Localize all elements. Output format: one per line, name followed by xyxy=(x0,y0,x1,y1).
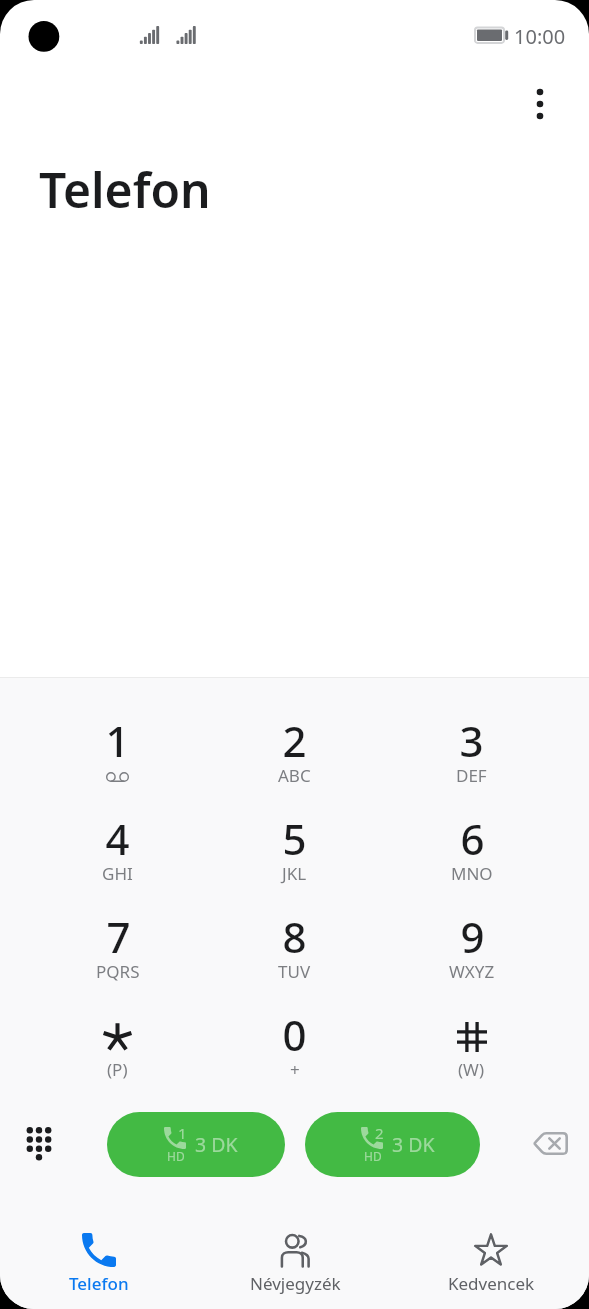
button[interactable]: 3 xyxy=(383,699,560,797)
button[interactable]: Keypad xyxy=(9,1112,69,1172)
button[interactable]: 1 xyxy=(29,699,206,797)
staticText: DEF xyxy=(456,764,487,787)
button[interactable]: Backspace xyxy=(520,1113,580,1173)
button[interactable]: 7 xyxy=(29,895,206,993)
button[interactable]: 2 xyxy=(305,1112,480,1177)
staticText: 7 xyxy=(106,908,131,965)
staticText: PQRS xyxy=(96,960,140,983)
button[interactable]: 1 xyxy=(107,1112,285,1177)
staticText: Névjegyzék xyxy=(250,1272,341,1295)
staticText: 0 xyxy=(282,1006,307,1063)
staticText: 10:00 xyxy=(514,23,566,50)
button[interactable]: 4 xyxy=(29,797,206,895)
staticText: 1 xyxy=(105,712,130,769)
staticText: 8 xyxy=(282,908,307,965)
staticText: 6 xyxy=(460,810,485,867)
staticText: 4 xyxy=(105,810,130,867)
staticText: (W) xyxy=(458,1058,485,1081)
button[interactable]: 8 xyxy=(206,895,383,993)
staticText: 1 xyxy=(178,1123,187,1143)
staticText: + xyxy=(290,1058,300,1081)
button[interactable]: 9 xyxy=(383,895,560,993)
staticText: HD xyxy=(364,1148,382,1164)
staticText: 2 xyxy=(282,712,307,769)
staticText: MNO xyxy=(451,862,493,885)
button[interactable]: Pound xyxy=(383,993,560,1091)
staticText: GHI xyxy=(102,862,133,885)
button[interactable]: 5 xyxy=(206,797,383,895)
button[interactable]: 6 xyxy=(383,797,560,895)
staticText: Telefon xyxy=(39,157,211,222)
staticText: 2 xyxy=(375,1123,384,1143)
staticText: Telefon xyxy=(69,1272,129,1295)
staticText: (P) xyxy=(107,1058,128,1081)
button[interactable]: 0 xyxy=(206,993,383,1091)
button[interactable]: Névjegyzék xyxy=(197,1199,393,1309)
button[interactable]: More options xyxy=(512,76,568,132)
staticText: 5 xyxy=(282,810,307,867)
staticText: JKL xyxy=(282,862,307,885)
staticText: HD xyxy=(167,1148,185,1164)
staticText: 3 DK xyxy=(195,1131,238,1158)
button[interactable]: Telefon xyxy=(0,1199,197,1309)
staticText: 9 xyxy=(460,908,485,965)
staticText: 3 xyxy=(459,712,484,769)
staticText: ABC xyxy=(278,764,311,787)
staticText: Kedvencek xyxy=(448,1272,535,1295)
button[interactable]: Kedvencek xyxy=(393,1199,589,1309)
staticText: TUV xyxy=(278,960,311,983)
button[interactable]: 2 xyxy=(206,699,383,797)
button[interactable]: Star xyxy=(29,993,206,1091)
staticText: WXYZ xyxy=(449,960,495,983)
staticText: 3 DK xyxy=(392,1131,435,1158)
